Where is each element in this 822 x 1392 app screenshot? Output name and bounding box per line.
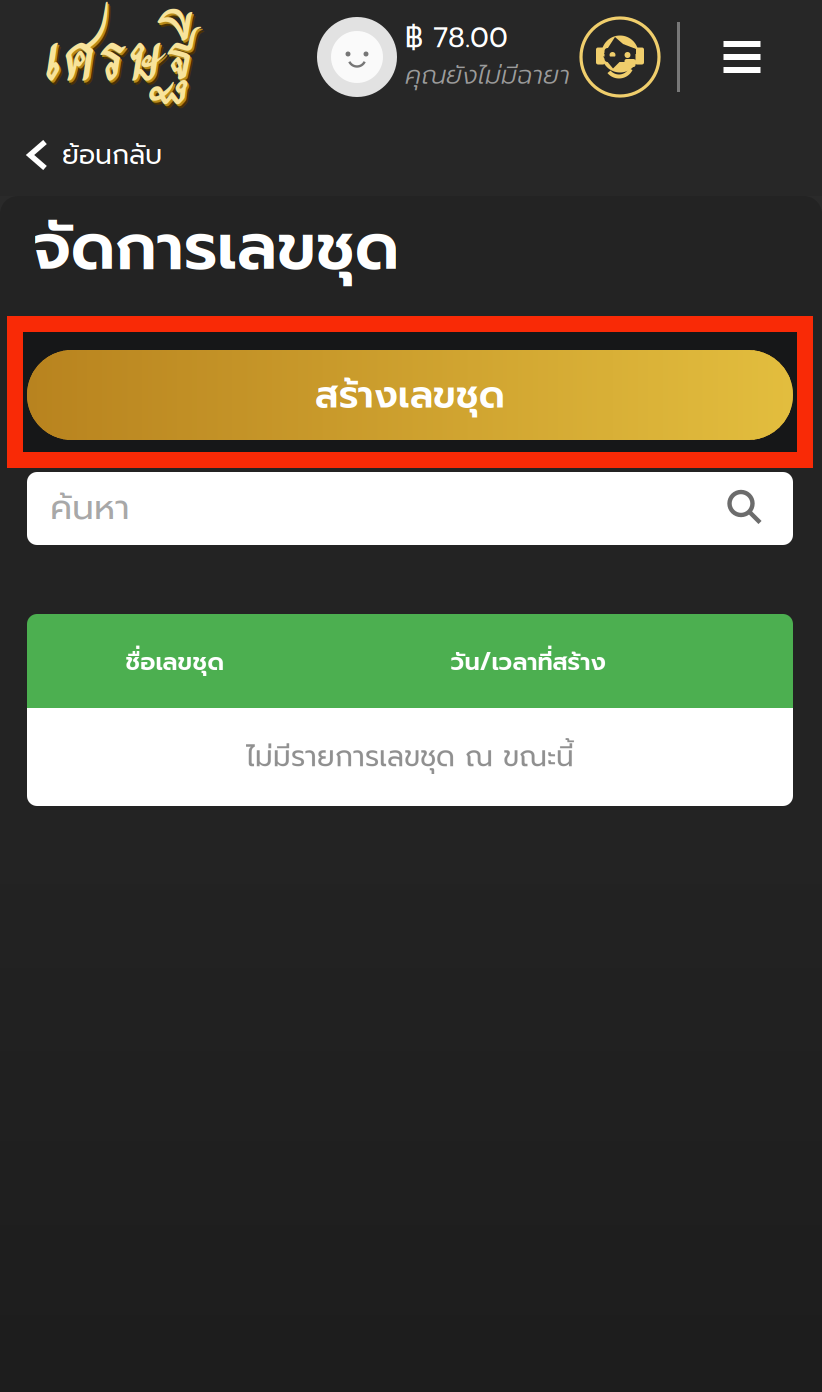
staticText: เศรษฐี bbox=[46, 7, 197, 111]
staticText: จัดการเลขชุด bbox=[33, 199, 399, 296]
button[interactable]: Customer support bbox=[578, 15, 662, 99]
button[interactable]: Menu bbox=[706, 22, 778, 92]
staticText: ค้นหา bbox=[50, 481, 130, 534]
button[interactable]: ย้อนกลับ bbox=[2, 120, 184, 190]
staticText: ย้อนกลับ bbox=[62, 135, 162, 175]
staticText: ฿ 78.00 bbox=[405, 17, 508, 59]
button[interactable]: Home bbox=[25, 2, 215, 112]
button[interactable]: ค้นหา bbox=[27, 472, 793, 545]
button[interactable]: สร้างเลขชุด bbox=[27, 350, 793, 440]
staticText: เศรษฐี bbox=[47, 9, 198, 113]
staticText: สร้างเลขชุด bbox=[315, 367, 505, 423]
staticText: วัน/เวลาที่สร้าง bbox=[450, 644, 605, 680]
staticText: คุณยังไม่มีฉายา bbox=[405, 56, 570, 94]
staticText: ชื่อเลขชุด bbox=[125, 644, 224, 680]
staticText: เศรษฐี bbox=[44, 5, 195, 109]
staticText: ไม่มีรายการเลขชุด ณ ขณะนี้ bbox=[246, 736, 574, 778]
button[interactable]: Balance 78.00 baht bbox=[317, 9, 570, 105]
